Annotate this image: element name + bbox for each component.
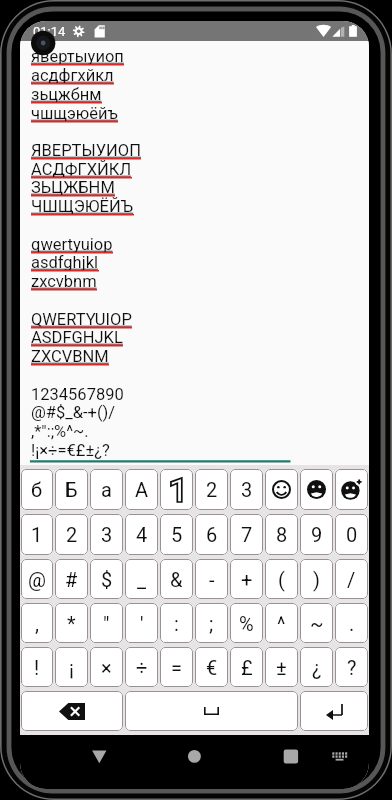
button[interactable]: " — [90, 603, 123, 643]
staticText: QWERTYUIOP — [31, 310, 132, 329]
button[interactable]: 5 — [160, 514, 193, 555]
button[interactable]: = — [160, 647, 193, 687]
button[interactable]: , — [21, 603, 53, 643]
staticText: ASDFGHJKL — [31, 328, 123, 347]
button[interactable] — [335, 469, 368, 510]
button[interactable]: € — [195, 647, 228, 687]
staticText: asdfghjkl — [31, 253, 99, 272]
staticText: zxcvbnm — [31, 272, 97, 291]
staticText: ,*":;%^~. — [31, 422, 89, 441]
staticText: асдфгхйкл — [31, 66, 114, 85]
button[interactable]: а — [90, 469, 123, 510]
button[interactable]: ~ — [300, 603, 333, 643]
button[interactable]: @ — [21, 559, 53, 599]
staticText: - — [209, 568, 215, 591]
button[interactable]: А — [125, 469, 158, 510]
staticText: ! — [34, 656, 40, 679]
staticText: + — [241, 568, 253, 591]
staticText: ZXCVBNM — [31, 347, 109, 366]
staticText: ? — [347, 656, 357, 679]
staticText: $ — [101, 568, 113, 591]
button[interactable]: б — [21, 469, 53, 510]
button[interactable]: 0 — [335, 514, 368, 555]
button[interactable]: $ — [90, 559, 123, 599]
button[interactable]: Recent apps — [240, 735, 320, 789]
staticText: ¿ — [312, 656, 322, 679]
staticText: ^ — [277, 612, 286, 635]
button[interactable]: 6 — [195, 514, 228, 555]
staticText: " — [103, 612, 110, 635]
staticText: 2 — [66, 523, 78, 546]
staticText: @ — [28, 568, 46, 591]
button[interactable]: Switch keyboard — [320, 735, 369, 789]
button[interactable]: ¿ — [300, 647, 333, 687]
button[interactable]: - — [195, 559, 228, 599]
button[interactable]: Space — [125, 691, 298, 731]
staticText: 01:14 — [33, 24, 66, 39]
button[interactable]: ¡ — [55, 647, 88, 687]
button[interactable]: Enter — [300, 691, 368, 731]
staticText: = — [171, 656, 182, 679]
button[interactable]: ! — [21, 647, 53, 687]
staticText: ЗЬЦЖБНМ — [31, 178, 115, 197]
button[interactable]: 7 — [230, 514, 263, 555]
button[interactable]: × — [90, 647, 123, 687]
staticText: А — [135, 478, 149, 501]
button[interactable] — [265, 469, 298, 510]
staticText: 3 — [241, 478, 253, 501]
staticText: 8 — [276, 523, 288, 546]
button[interactable] — [300, 469, 333, 510]
staticText: 1234567890 — [31, 385, 124, 404]
button[interactable]: 3 — [90, 514, 123, 555]
staticText: × — [101, 656, 112, 679]
staticText: 9 — [311, 523, 323, 546]
staticText: , — [35, 612, 39, 635]
button[interactable]: 3 — [230, 469, 263, 510]
button[interactable]: & — [160, 559, 193, 599]
staticText: 6 — [206, 523, 218, 546]
button[interactable]: Backspace — [21, 691, 123, 731]
button[interactable]: 9 — [300, 514, 333, 555]
button[interactable]: # — [55, 559, 88, 599]
staticText: чшщэюёйъ — [31, 104, 118, 123]
staticText: . — [349, 612, 355, 635]
button[interactable]: Б — [55, 469, 88, 510]
button[interactable]: Home — [146, 735, 240, 789]
button[interactable]: 2 — [195, 469, 228, 510]
button[interactable]: £ — [230, 647, 263, 687]
staticText: / — [347, 568, 356, 591]
staticText: : — [174, 612, 179, 635]
staticText: # — [65, 568, 78, 591]
staticText: ; — [209, 612, 214, 635]
button[interactable] — [160, 469, 193, 510]
staticText: ¡ — [69, 656, 74, 679]
button[interactable]: 8 — [265, 514, 298, 555]
button[interactable]: ÷ — [125, 647, 158, 687]
button[interactable]: + — [230, 559, 263, 599]
staticText: * — [67, 612, 76, 635]
button[interactable]: . — [335, 603, 368, 643]
staticText: ' — [140, 612, 144, 635]
button[interactable]: _ — [125, 559, 158, 599]
staticText: ЯВЕРТЫУИОП — [31, 141, 141, 160]
button[interactable]: ; — [195, 603, 228, 643]
button[interactable]: ( — [265, 559, 298, 599]
staticText: ЧШЩЭЮЁЙЪ — [31, 197, 134, 216]
button[interactable]: 2 — [55, 514, 88, 555]
button[interactable]: 4 — [125, 514, 158, 555]
button[interactable]: % — [230, 603, 263, 643]
staticText: зьцжбнм — [31, 85, 102, 104]
button[interactable]: : — [160, 603, 193, 643]
button[interactable]: / — [335, 559, 368, 599]
button[interactable]: явертыуиоп — [20, 41, 369, 465]
button[interactable]: ± — [265, 647, 298, 687]
staticText: ± — [276, 656, 287, 679]
staticText: % — [239, 612, 254, 635]
button[interactable]: * — [55, 603, 88, 643]
button[interactable]: 1 — [21, 514, 53, 555]
button[interactable]: ? — [335, 647, 368, 687]
button[interactable]: ^ — [265, 603, 298, 643]
button[interactable]: Back — [20, 735, 146, 789]
button[interactable]: ' — [125, 603, 158, 643]
button[interactable]: ) — [300, 559, 333, 599]
